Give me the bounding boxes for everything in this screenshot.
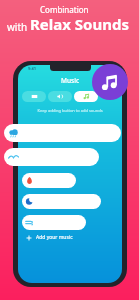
button[interactable]: Music	[92, 64, 128, 100]
button[interactable]: Volume	[48, 91, 72, 102]
staticText: Combination	[40, 4, 89, 15]
staticText: Add your music	[36, 234, 73, 241]
staticText: Relax Sounds	[30, 14, 129, 34]
button[interactable]: Wind	[22, 215, 86, 230]
staticText: 9:41	[28, 66, 36, 71]
button[interactable]: Fire	[22, 173, 76, 188]
staticText: Keep adding button to add sounds	[18, 108, 122, 113]
staticText: with	[7, 20, 30, 34]
button[interactable]: Melody	[74, 91, 98, 102]
staticText: Music	[18, 76, 122, 85]
button[interactable]: Add your music	[26, 234, 73, 241]
button[interactable]: Night	[22, 194, 101, 209]
button[interactable]: Rain	[4, 124, 121, 142]
button[interactable]: Birds	[4, 148, 99, 166]
button[interactable]: Rain	[22, 91, 46, 102]
